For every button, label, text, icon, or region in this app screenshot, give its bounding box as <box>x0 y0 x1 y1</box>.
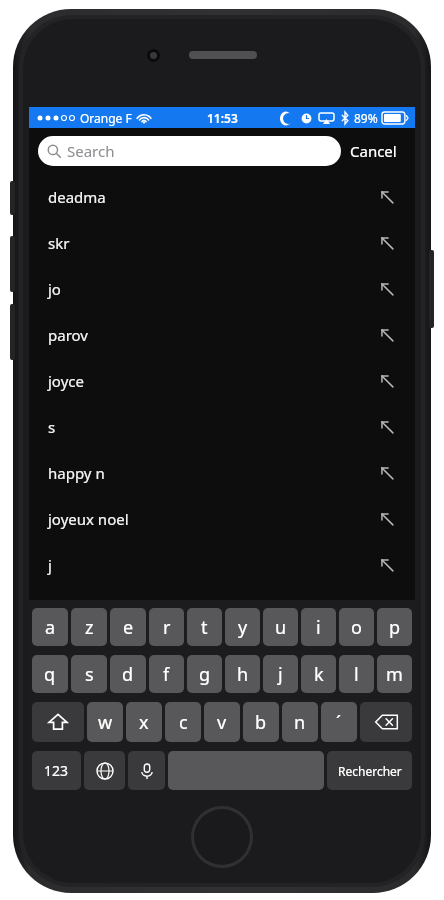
staticText: t <box>201 615 208 640</box>
button[interactable]: k <box>301 655 336 693</box>
button[interactable]: o <box>339 608 374 646</box>
staticText: m <box>386 662 403 687</box>
button[interactable]: deadma <box>29 174 415 220</box>
button[interactable]: f <box>149 655 184 693</box>
button[interactable]: parov <box>29 312 415 358</box>
button[interactable]: p <box>377 608 412 646</box>
staticText: z <box>85 615 94 640</box>
staticText: c <box>179 710 188 735</box>
staticText: y <box>238 615 248 640</box>
other: Use suggestion joyeux noel <box>376 508 398 530</box>
button[interactable]: g <box>187 655 222 693</box>
other: Use suggestion skr <box>376 232 398 254</box>
staticText: d <box>122 662 134 687</box>
staticText: ´ <box>336 710 342 735</box>
other: Use suggestion j <box>376 554 398 576</box>
staticText: deadma <box>48 187 376 207</box>
staticText: q <box>44 662 56 687</box>
button[interactable]: Backspace <box>360 702 412 742</box>
button[interactable]: y <box>225 608 260 646</box>
staticText: e <box>123 615 134 640</box>
staticText: f <box>163 662 170 687</box>
other: Use suggestion parov <box>376 324 398 346</box>
staticText: 11:53 <box>207 110 238 126</box>
button[interactable]: d <box>110 655 146 693</box>
staticText: r <box>163 615 171 640</box>
button[interactable]: h <box>225 655 260 693</box>
staticText: v <box>217 710 227 735</box>
staticText: 89% <box>354 110 378 126</box>
other: Use suggestion happy n <box>376 462 398 484</box>
button[interactable]: c <box>165 702 201 742</box>
staticText: skr <box>48 233 376 253</box>
staticText: a <box>45 615 56 640</box>
button[interactable]: s <box>71 655 107 693</box>
button[interactable]: 123 <box>32 751 81 790</box>
button[interactable]: b <box>243 702 279 742</box>
staticText: joyeux noel <box>48 509 376 529</box>
button[interactable]: m <box>377 655 412 693</box>
button[interactable]: j <box>263 655 298 693</box>
staticText: b <box>255 710 267 735</box>
button[interactable]: j <box>29 542 415 588</box>
button[interactable]: joyeux noel <box>29 496 415 542</box>
button[interactable]: q <box>32 655 68 693</box>
other: Use suggestion s <box>376 416 398 438</box>
staticText: g <box>199 662 211 687</box>
staticText: n <box>294 710 306 735</box>
staticText: h <box>237 662 249 687</box>
button[interactable]: joyce <box>29 358 415 404</box>
button[interactable]: z <box>71 608 107 646</box>
staticText: happy n <box>48 463 376 483</box>
button[interactable]: skr <box>29 220 415 266</box>
staticText: jo <box>48 279 376 299</box>
staticText: Orange F <box>80 110 132 126</box>
staticText: s <box>48 417 376 437</box>
button[interactable]: a <box>32 608 68 646</box>
button[interactable]: r <box>149 608 184 646</box>
button[interactable]: Dictate <box>128 751 165 790</box>
button[interactable]: e <box>110 608 146 646</box>
button[interactable]: i <box>301 608 336 646</box>
button[interactable]: Search <box>38 136 341 166</box>
other: Use suggestion deadma <box>376 186 398 208</box>
staticText: Cancel <box>350 141 397 161</box>
other: Use suggestion jo <box>376 278 398 300</box>
staticText: Rechercher <box>338 763 402 779</box>
button[interactable]: Change keyboard language <box>84 751 125 790</box>
staticText: u <box>275 615 287 640</box>
button[interactable]: Rechercher <box>327 751 412 790</box>
button[interactable]: v <box>204 702 240 742</box>
staticText: i <box>316 615 321 640</box>
staticText: joyce <box>48 371 376 391</box>
button[interactable]: Cancel <box>341 135 406 167</box>
staticText: k <box>314 662 324 687</box>
button[interactable]: l <box>339 655 374 693</box>
staticText: 123 <box>44 761 69 780</box>
button[interactable]: jo <box>29 266 415 312</box>
staticText: x <box>139 710 149 735</box>
staticText: Search <box>67 141 115 161</box>
button[interactable]: t <box>187 608 222 646</box>
staticText: s <box>85 662 94 687</box>
staticText: j <box>278 662 283 687</box>
button[interactable]: happy n <box>29 450 415 496</box>
button[interactable]: s <box>29 404 415 450</box>
staticText: w <box>98 710 113 735</box>
staticText: l <box>354 662 359 687</box>
staticText: parov <box>48 325 376 345</box>
button[interactable]: Space <box>168 751 324 790</box>
button[interactable]: u <box>263 608 298 646</box>
staticText: o <box>351 615 362 640</box>
staticText: j <box>48 555 376 575</box>
button[interactable]: w <box>87 702 123 742</box>
button[interactable]: x <box>126 702 162 742</box>
button[interactable]: ´ <box>321 702 357 742</box>
button[interactable]: Shift <box>32 702 84 742</box>
button[interactable]: n <box>282 702 318 742</box>
other: Use suggestion joyce <box>376 370 398 392</box>
staticText: p <box>389 615 401 640</box>
